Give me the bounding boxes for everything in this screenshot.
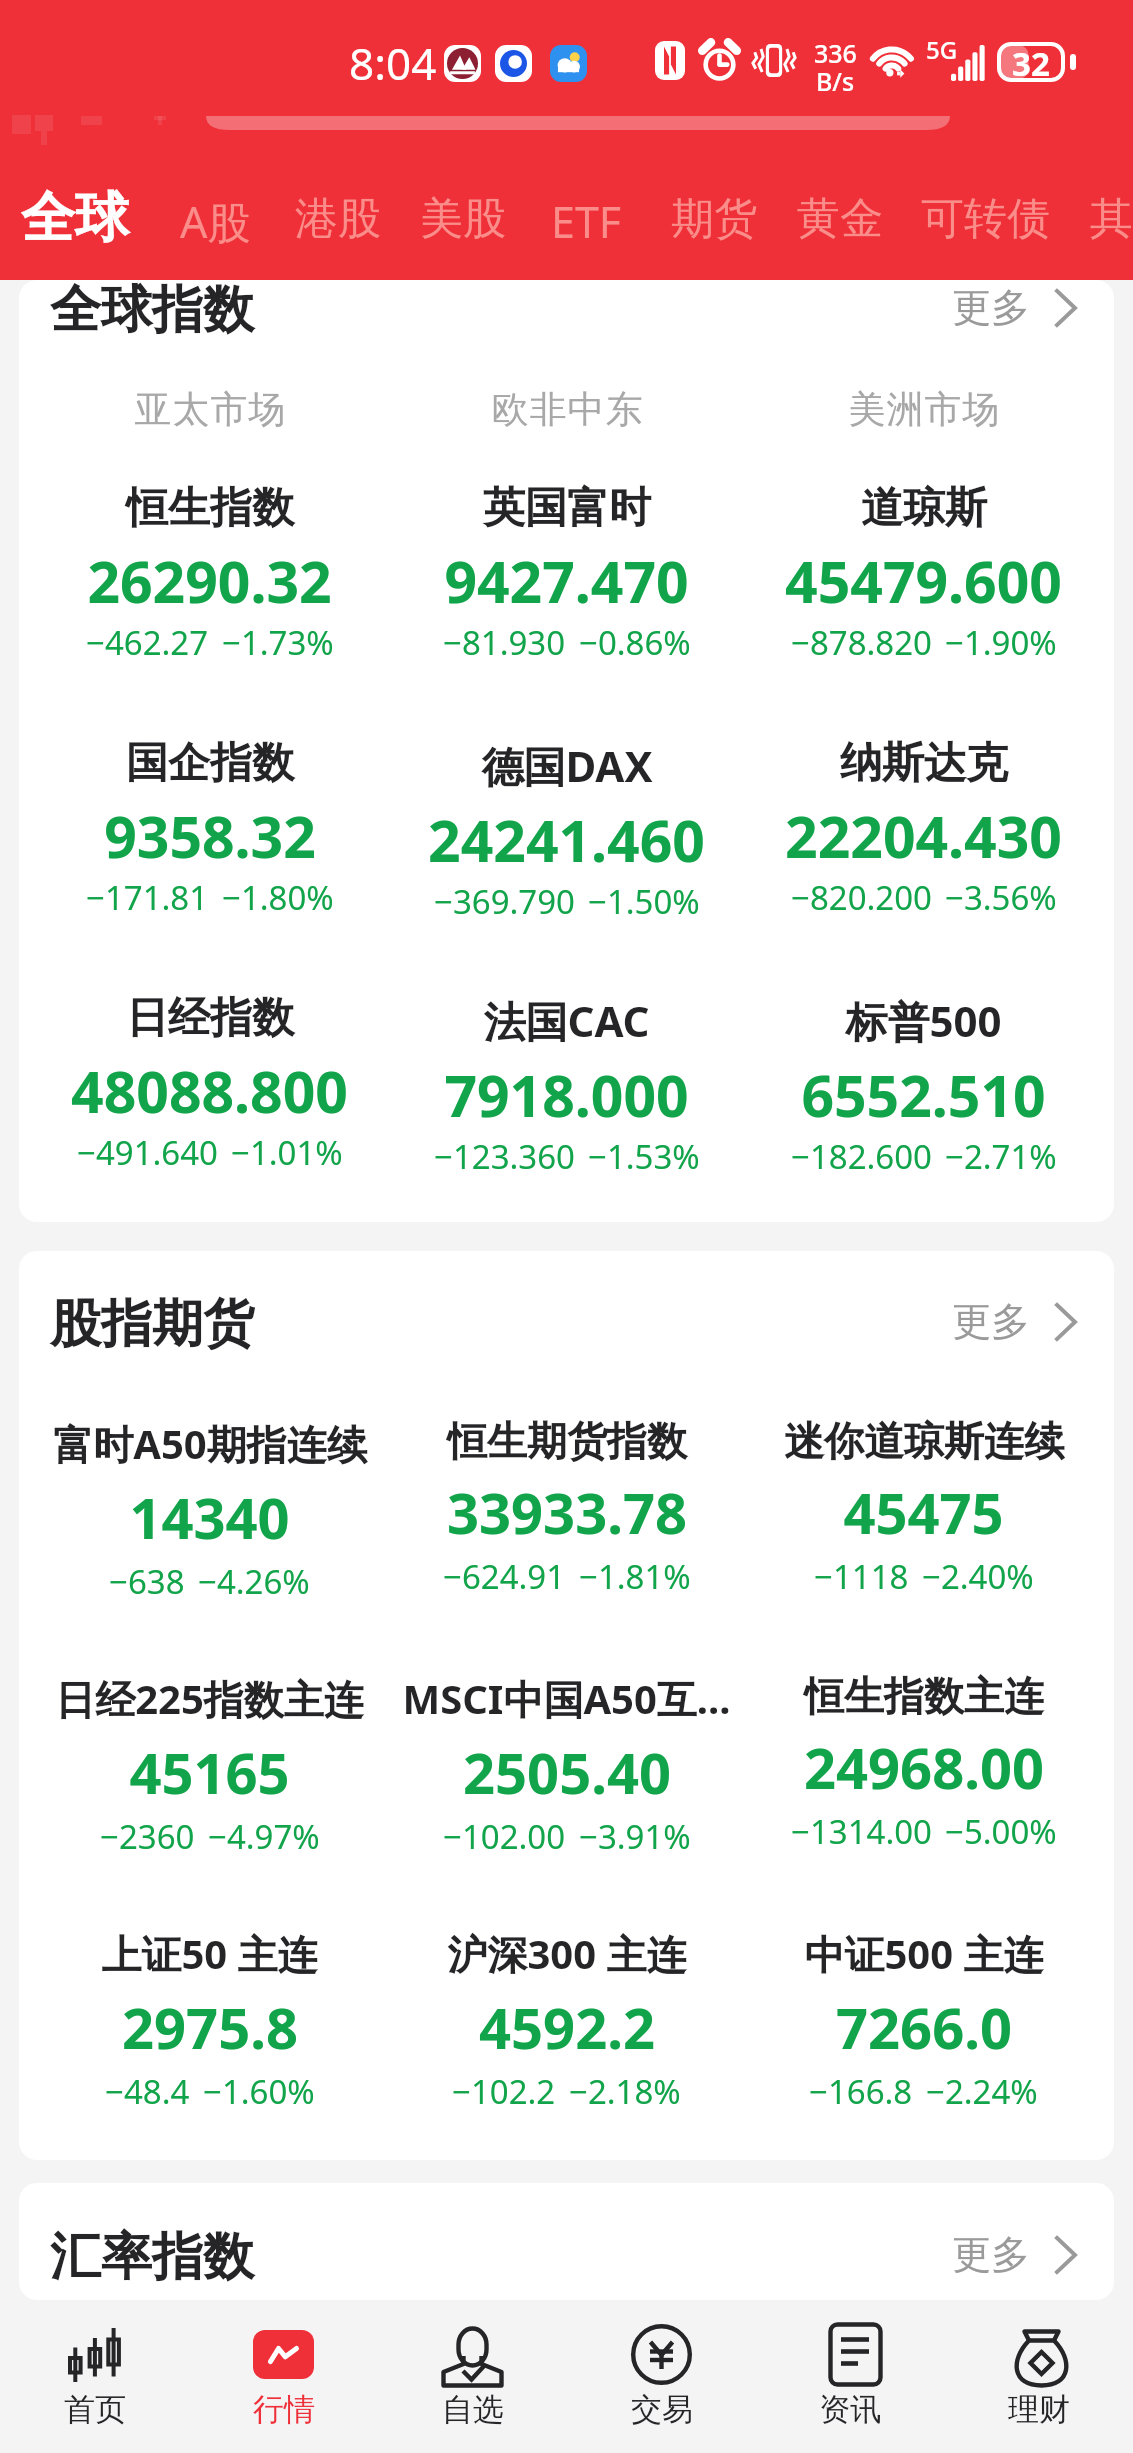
button[interactable]: Markets — [189, 2300, 378, 2453]
staticText: 美股 — [420, 192, 506, 246]
staticText: −462.27 — [86, 620, 209, 665]
staticText: −1.53% — [588, 1134, 700, 1179]
button[interactable]: 全球 — [5, 176, 145, 260]
staticText: 4592.2 — [479, 1989, 655, 2065]
button[interactable]: 法国CAC — [388, 992, 745, 1179]
staticText: −182.600 — [791, 1134, 932, 1179]
button[interactable]: 恒生指数 — [31, 482, 388, 665]
button[interactable]: 德国DAX — [388, 737, 745, 924]
staticText: 理财 — [1008, 2390, 1070, 2429]
button[interactable]: 日经指数 — [31, 992, 388, 1175]
staticText: 日经225指数主连 — [55, 1671, 364, 1726]
staticText: 更多 — [952, 283, 1030, 332]
staticText: 更多 — [952, 1297, 1030, 1346]
staticText: −123.360 — [434, 1134, 575, 1179]
staticText: −369.790 — [434, 879, 575, 924]
staticText: 26290.32 — [87, 542, 332, 620]
staticText: 道琼斯 — [861, 482, 987, 535]
other: Wealth — [1011, 2327, 1067, 2386]
button[interactable]: 更多 — [932, 272, 1114, 343]
staticText: 24968.00 — [804, 1729, 1044, 1805]
staticText: 恒生指数 — [126, 482, 294, 535]
button[interactable]: 恒生指数主连 — [745, 1671, 1102, 1854]
staticText: 24241.460 — [428, 801, 705, 879]
button[interactable]: 中证500 主连 — [745, 1926, 1102, 2114]
staticText: −166.8 — [809, 2069, 913, 2114]
button[interactable]: 英国富时 — [388, 482, 745, 665]
staticText: −3.91% — [579, 1814, 691, 1859]
staticText: −1314.00 — [791, 1809, 932, 1854]
staticText: −2.40% — [922, 1554, 1034, 1599]
staticText: −1.50% — [588, 879, 700, 924]
staticText: −4.26% — [198, 1559, 310, 1604]
staticText: 股指期货 — [50, 1292, 254, 1356]
button[interactable]: 期货 — [657, 180, 771, 258]
staticText: 9358.32 — [104, 797, 316, 875]
staticText: 汇率指数 — [50, 2225, 254, 2289]
button[interactable]: 标普500 — [745, 992, 1102, 1179]
button[interactable]: Wealth — [944, 2300, 1133, 2453]
staticText: 纳斯达克 — [840, 737, 1008, 790]
button[interactable]: 纳斯达克 — [745, 737, 1102, 920]
staticText: 国企指数 — [126, 737, 294, 790]
staticText: 亚太市场 — [134, 386, 286, 433]
staticText: −1.60% — [203, 2069, 315, 2114]
staticText: 32 — [1012, 41, 1050, 81]
button[interactable]: ETF — [537, 180, 636, 263]
staticText: 自选 — [442, 2390, 504, 2429]
staticText: 全球指数 — [50, 278, 254, 342]
staticText: A股 — [180, 192, 251, 251]
button[interactable]: Trade — [567, 2300, 756, 2453]
button[interactable]: News — [755, 2300, 944, 2453]
staticText: 8:04 — [349, 33, 437, 93]
staticText: 336 — [814, 36, 857, 70]
staticText: 资讯 — [819, 2390, 881, 2429]
button[interactable]: 黄金 — [783, 180, 897, 258]
staticText: 美洲市场 — [848, 386, 1000, 433]
staticText: ETF — [551, 192, 622, 251]
staticText: 黄金 — [797, 192, 883, 246]
staticText: −1.01% — [231, 1130, 343, 1175]
button[interactable]: MSCI中国A50互... — [388, 1671, 745, 1859]
staticText: −102.2 — [452, 2069, 556, 2114]
button[interactable]: 美股 — [406, 180, 520, 258]
staticText: 45475 — [843, 1474, 1004, 1550]
staticText: −5.00% — [945, 1809, 1057, 1854]
button[interactable]: 更多 — [932, 2219, 1114, 2290]
staticText: 迷你道琼斯连续 — [784, 1416, 1064, 1466]
button[interactable]: 上证50 主连 — [31, 1926, 388, 2114]
staticText: 行情 — [253, 2390, 315, 2429]
staticText: 英国富时 — [483, 482, 651, 535]
staticText: 标普500 — [845, 992, 1002, 1049]
staticText: 沪深300 主连 — [447, 1926, 687, 1981]
button[interactable]: 其 — [1076, 180, 1133, 258]
button[interactable]: 恒生期货指数 — [388, 1416, 745, 1599]
staticText: 可转债 — [921, 192, 1050, 246]
button[interactable]: A股 — [166, 180, 265, 263]
staticText: −820.200 — [791, 875, 932, 920]
staticText: 33933.78 — [447, 1474, 687, 1550]
button[interactable]: 沪深300 主连 — [388, 1926, 745, 2114]
staticText: 45479.600 — [785, 542, 1062, 620]
button[interactable]: 富时A50期指连续 — [31, 1416, 388, 1604]
button[interactable]: 道琼斯 — [745, 482, 1102, 665]
staticText: −3.56% — [945, 875, 1057, 920]
button[interactable]: Watchlist — [378, 2300, 567, 2453]
button[interactable]: 迷你道琼斯连续 — [745, 1416, 1102, 1599]
staticText: −1.73% — [222, 620, 334, 665]
other: Home — [66, 2328, 124, 2382]
button[interactable]: 更多 — [932, 1286, 1114, 1357]
button[interactable]: 港股 — [281, 180, 395, 258]
staticText: MSCI中国A50互... — [402, 1671, 731, 1726]
staticText: 恒生期货指数 — [447, 1416, 687, 1466]
staticText: 48088.800 — [71, 1052, 348, 1130]
button[interactable]: Home — [0, 2300, 189, 2453]
staticText: 法国CAC — [483, 992, 650, 1049]
button[interactable]: 可转债 — [907, 180, 1064, 258]
button[interactable]: 国企指数 — [31, 737, 388, 920]
staticText: 2505.40 — [463, 1734, 671, 1810]
button[interactable]: 日经225指数主连 — [31, 1671, 388, 1859]
staticText: 45165 — [129, 1734, 290, 1810]
other: Markets — [253, 2330, 314, 2379]
staticText: 9427.470 — [444, 542, 689, 620]
